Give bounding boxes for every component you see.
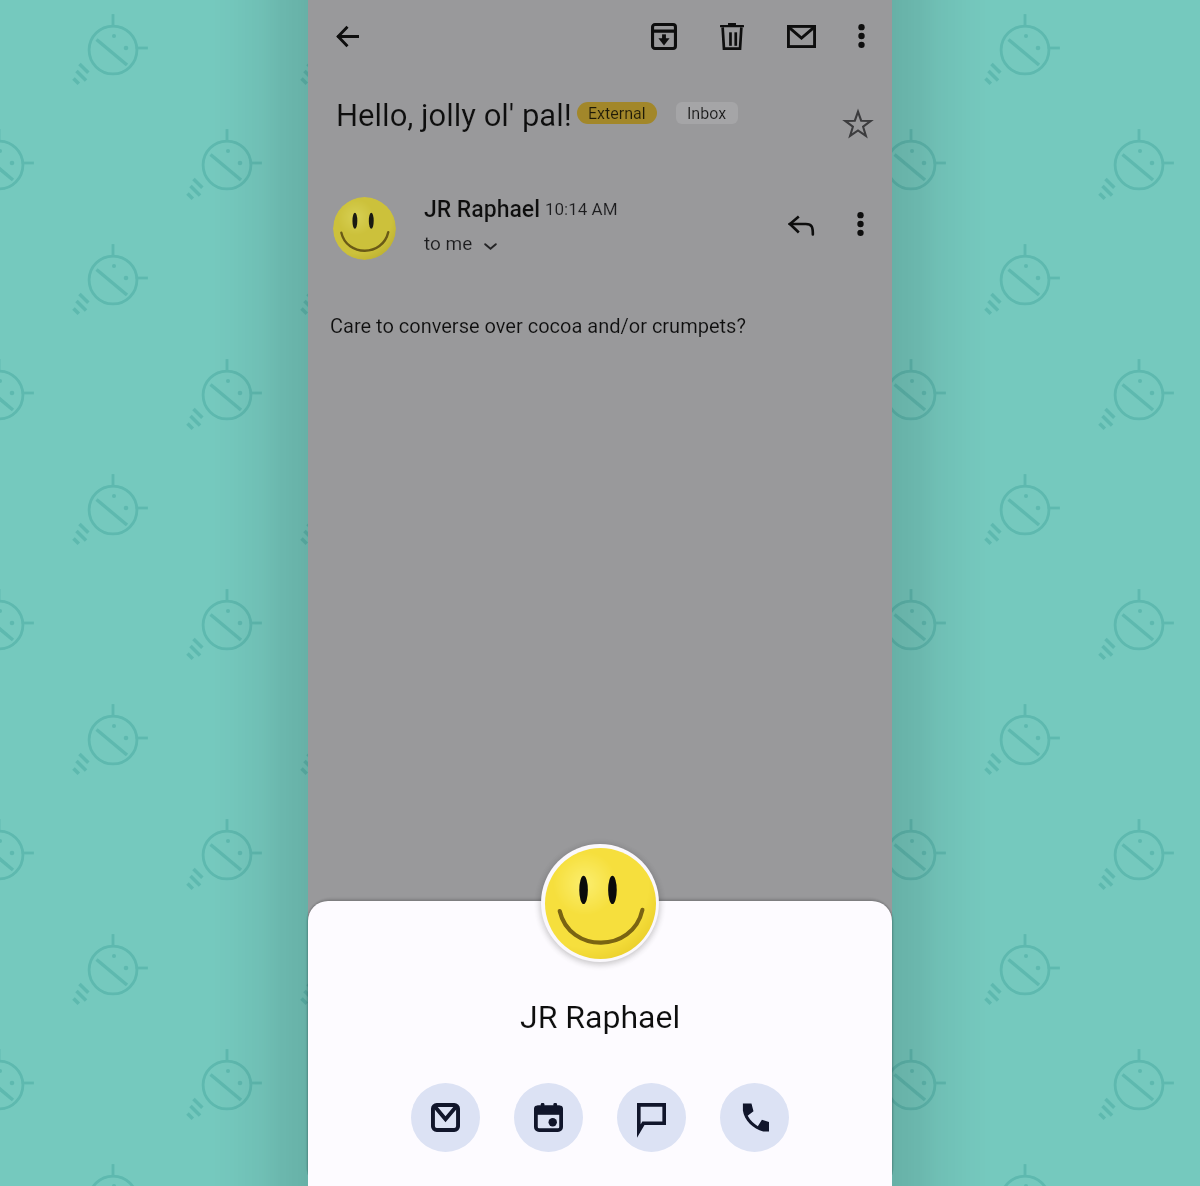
button[interactable]: to me	[420, 230, 503, 258]
button[interactable]: Contact photo	[537, 840, 663, 966]
button[interactable]: External	[577, 102, 657, 124]
button[interactable]: Calendar	[514, 1083, 583, 1152]
button[interactable]: More options	[837, 201, 883, 247]
staticText: Hello, jolly ol' pal!	[336, 97, 572, 133]
staticText: to me	[424, 232, 473, 254]
button[interactable]: Delete	[709, 13, 755, 59]
staticText: Care to converse over cocoa and/or crump…	[330, 314, 746, 337]
staticText: JR Raphael	[424, 196, 541, 223]
button[interactable]: Reply	[778, 202, 824, 248]
staticText: Inbox	[687, 104, 727, 123]
button[interactable]: More options	[838, 13, 884, 59]
staticText: External	[588, 104, 646, 123]
staticText: 10:14 AM	[545, 199, 618, 219]
button[interactable]: Back	[324, 13, 370, 59]
button[interactable]: Sender avatar	[333, 197, 396, 260]
button[interactable]: Call	[720, 1083, 789, 1152]
button[interactable]: Inbox	[676, 102, 738, 124]
staticText: JR Raphael	[520, 998, 681, 1036]
button[interactable]: Mark unread	[778, 13, 824, 59]
button[interactable]: Archive	[641, 13, 687, 59]
button[interactable]: Email	[411, 1083, 480, 1152]
button[interactable]: Message	[617, 1083, 686, 1152]
button[interactable]: Star	[835, 101, 881, 147]
